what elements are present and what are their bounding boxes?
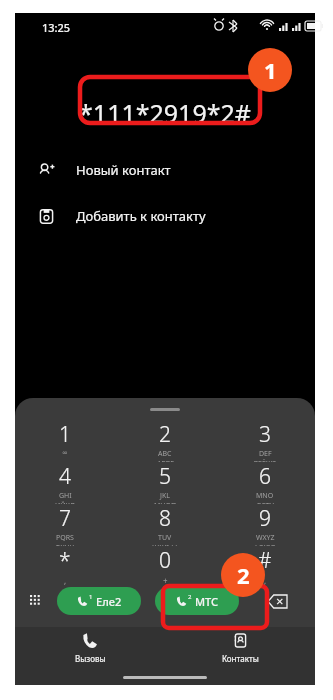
staticText: GHI: [59, 491, 72, 501]
button[interactable]: 2: [115, 420, 215, 462]
button[interactable]: 8: [115, 504, 215, 546]
staticText: 5: [159, 462, 171, 491]
button[interactable]: Backspace: [239, 584, 315, 618]
button[interactable]: 7: [15, 504, 115, 546]
button[interactable]: Вызовы: [15, 627, 165, 669]
staticText: 2: [159, 420, 171, 449]
staticText: 3: [259, 420, 271, 449]
staticText: АБВГ: [157, 459, 174, 462]
staticText: РСТУ: [257, 501, 274, 504]
button[interactable]: 4: [15, 462, 115, 504]
staticText: 7: [59, 504, 71, 533]
staticText: 1: [89, 593, 93, 601]
staticText: Еле2: [96, 594, 122, 609]
staticText: ∞: [62, 449, 68, 457]
button[interactable]: Keypad: [15, 584, 57, 618]
staticText: ДЕЁЖЗ: [253, 459, 277, 462]
staticText: Новый контакт: [76, 161, 171, 179]
staticText: DEF: [259, 449, 272, 459]
staticText: 1: [59, 420, 71, 449]
staticText: ШЩЪЫ: [152, 543, 178, 546]
button[interactable]: 2: [155, 587, 239, 615]
staticText: #: [258, 546, 272, 575]
staticText: 2: [237, 560, 250, 590]
staticText: ,: [264, 575, 267, 586]
staticText: 1: [264, 55, 277, 85]
staticText: TUV: [158, 533, 172, 543]
button[interactable]: 5: [115, 462, 215, 504]
staticText: 2: [188, 593, 192, 601]
staticText: PQRS: [56, 533, 74, 543]
staticText: ИЙКЛ: [55, 501, 75, 504]
staticText: JKL: [160, 491, 170, 501]
staticText: Вызовы: [75, 653, 106, 664]
staticText: *: [59, 546, 71, 575]
staticText: 4: [59, 462, 71, 491]
staticText: Добавить к контакту: [76, 207, 206, 225]
staticText: ,: [64, 575, 67, 586]
button[interactable]: Контакты: [165, 627, 315, 669]
staticText: 13:25: [42, 20, 71, 35]
button[interactable]: 9: [215, 504, 315, 546]
button[interactable]: #: [215, 546, 315, 586]
staticText: 6: [259, 462, 271, 491]
button[interactable]: 1: [15, 420, 115, 462]
staticText: МНОП: [154, 501, 177, 504]
button[interactable]: 6: [215, 462, 315, 504]
button[interactable]: Добавить к контакту: [15, 199, 315, 233]
staticText: MNO: [256, 491, 274, 501]
staticText: 9: [259, 504, 271, 533]
staticText: *111*2919*2#: [79, 96, 251, 130]
staticText: ABC: [158, 449, 172, 459]
staticText: Контакты: [222, 653, 259, 664]
button[interactable]: *: [15, 546, 115, 586]
button[interactable]: Новый контакт: [15, 153, 315, 187]
staticText: +: [163, 575, 168, 586]
button[interactable]: 3: [215, 420, 315, 462]
staticText: ФХЦЧ: [55, 543, 75, 546]
staticText: ЬЭЮЯ: [255, 543, 276, 546]
staticText: МТС: [195, 594, 219, 609]
staticText: WXYZ: [256, 533, 275, 543]
staticText: 0: [159, 546, 171, 575]
button[interactable]: 0: [115, 546, 215, 586]
button[interactable]: 1: [57, 587, 141, 615]
staticText: 8: [159, 504, 171, 533]
